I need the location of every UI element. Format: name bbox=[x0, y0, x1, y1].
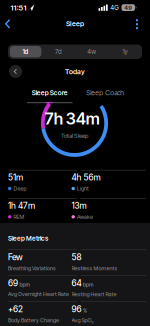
staticText: 1y bbox=[122, 48, 127, 55]
staticText: 11:51 bbox=[10, 3, 26, 12]
staticText: % bbox=[83, 307, 87, 314]
staticText: Breathing Variations bbox=[8, 265, 56, 271]
staticText: Deep bbox=[13, 185, 26, 192]
staticText: Restless Moments bbox=[71, 265, 117, 271]
staticText: 51m bbox=[8, 172, 23, 183]
button[interactable]: More options bbox=[130, 17, 144, 31]
staticText: Today bbox=[65, 68, 85, 76]
staticText: Light bbox=[77, 185, 89, 192]
button[interactable]: Previous day bbox=[9, 65, 22, 78]
staticText: 4h 56m bbox=[71, 172, 100, 183]
button[interactable]: 1y bbox=[109, 45, 141, 58]
button[interactable]: 7d bbox=[43, 45, 75, 58]
staticText: 7d bbox=[55, 48, 62, 55]
staticText: Sleep Score bbox=[32, 89, 68, 97]
staticText: bpm bbox=[83, 281, 93, 288]
staticText: Total Sleep bbox=[61, 132, 88, 139]
staticText: Sleep Coach bbox=[86, 89, 124, 97]
staticText: 4w bbox=[87, 48, 96, 55]
staticText: Resting Heart Rate bbox=[71, 291, 116, 297]
staticText: 64 bbox=[71, 278, 81, 288]
staticText: Body Battery Change bbox=[8, 317, 59, 323]
button[interactable]: Back bbox=[0, 16, 15, 31]
staticText: Sleep Metrics bbox=[8, 234, 48, 242]
button[interactable]: Sleep Coach bbox=[75, 86, 135, 100]
staticText: REM bbox=[13, 213, 24, 220]
staticText: Avg SpO₂ bbox=[71, 317, 93, 323]
staticText: 13m bbox=[71, 201, 86, 211]
button[interactable]: 1d bbox=[10, 46, 41, 57]
staticText: Avg Overnight Heart Rate bbox=[8, 291, 69, 297]
staticText: Few bbox=[8, 252, 23, 262]
staticText: 1h 47m bbox=[8, 201, 35, 211]
staticText: 4G bbox=[110, 4, 118, 11]
staticText: 96 bbox=[71, 304, 81, 314]
button[interactable]: 4w bbox=[76, 45, 108, 58]
staticText: Awake bbox=[77, 213, 93, 220]
staticText: 7h 34m bbox=[45, 109, 100, 128]
staticText: bpm bbox=[19, 281, 29, 288]
staticText: 49 bbox=[124, 4, 132, 11]
staticText: Sleep bbox=[66, 19, 84, 28]
staticText: 69 bbox=[8, 278, 18, 288]
staticText: 58 bbox=[71, 252, 81, 262]
staticText: 1d bbox=[23, 48, 29, 55]
button[interactable]: Sleep Score bbox=[20, 86, 80, 100]
staticText: +62 bbox=[8, 304, 23, 314]
